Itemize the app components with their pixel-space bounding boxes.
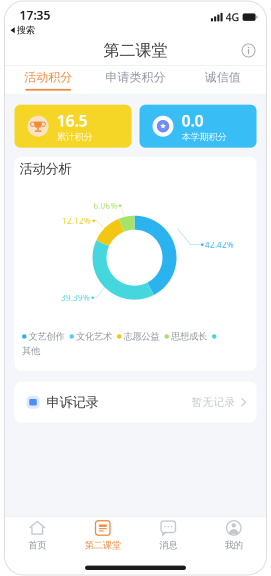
button[interactable]: 活动积分 <box>4 66 92 94</box>
staticText: 16.5 <box>56 110 87 131</box>
button[interactable]: 我的 <box>201 521 266 551</box>
staticText: 我的 <box>225 539 243 551</box>
staticText: 第二课堂 <box>103 41 167 60</box>
staticText: 4G <box>226 10 240 24</box>
staticText: 志愿公益 <box>123 331 159 342</box>
button[interactable]: 申请类积分 <box>92 66 179 94</box>
staticText: 6.06% <box>93 200 117 211</box>
staticText: 文化艺术 <box>76 331 112 342</box>
staticText: 其他 <box>22 345 40 357</box>
staticText: 42.42% <box>205 239 234 250</box>
staticText: 12.12% <box>62 215 91 226</box>
staticText: 暂无记录 <box>191 396 235 409</box>
staticText: 39.39% <box>61 292 90 303</box>
staticText: 消息 <box>159 539 177 551</box>
staticText: 申诉记录 <box>46 394 98 410</box>
staticText: 文艺创作 <box>28 331 64 342</box>
staticText: 0.0 <box>181 110 203 131</box>
button[interactable]: 第二课堂 <box>70 521 135 551</box>
button[interactable]: 16.5 <box>14 105 131 148</box>
staticText: 思想成长 <box>171 331 207 342</box>
button[interactable]: 申诉记录 <box>14 382 256 423</box>
staticText: 搜索 <box>17 24 35 36</box>
staticText: 首页 <box>28 539 46 551</box>
staticText: 申请类积分 <box>105 70 165 85</box>
button[interactable]: 首页 <box>4 521 70 551</box>
staticText: 累计积分 <box>56 131 92 143</box>
staticText: 本学期积分 <box>181 131 226 143</box>
button[interactable]: 诚信值 <box>179 66 266 94</box>
button[interactable]: Info <box>239 41 266 59</box>
staticText: 活动积分 <box>24 70 72 85</box>
staticText: 诚信值 <box>205 70 241 85</box>
staticText: 活动分析 <box>19 160 71 177</box>
staticText: 17:35 <box>19 7 50 23</box>
button[interactable]: 0.0 <box>139 105 256 148</box>
button[interactable]: 消息 <box>135 521 201 551</box>
staticText: 第二课堂 <box>85 539 121 551</box>
